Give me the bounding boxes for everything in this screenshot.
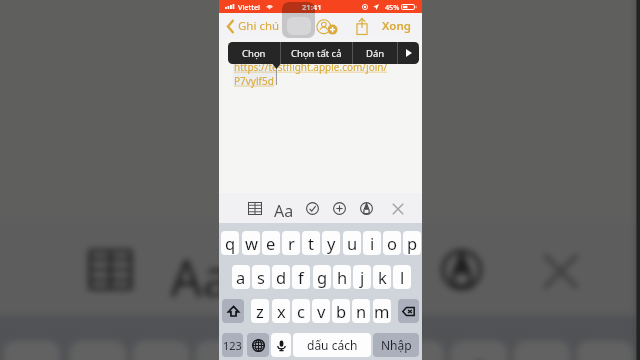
button[interactable]: More options (398, 42, 419, 64)
button[interactable]: p (577, 341, 633, 360)
staticText: r (214, 344, 236, 360)
staticText: P7vylf5d (234, 74, 274, 88)
staticText: e (266, 232, 276, 254)
staticText: Nhập (381, 337, 412, 353)
staticText: Aa (274, 200, 294, 217)
button[interactable]: n (352, 299, 370, 323)
staticText: Aa (170, 243, 233, 297)
staticText: d (276, 266, 287, 288)
button[interactable]: Add attachment (333, 202, 346, 215)
button[interactable]: t (302, 231, 320, 255)
staticText: Dán (366, 47, 385, 60)
staticText: r (288, 232, 295, 254)
staticText: Ghi chú (238, 18, 280, 34)
button[interactable]: Hide keyboard (542, 252, 580, 290)
button[interactable]: i (451, 341, 507, 360)
button[interactable]: o (514, 341, 570, 360)
button[interactable]: k (373, 265, 391, 289)
button[interactable]: i (363, 231, 381, 255)
button[interactable]: Ghi chú (219, 18, 284, 34)
button[interactable]: Checklist (271, 249, 312, 290)
staticText: n (356, 300, 367, 322)
button[interactable]: s (252, 265, 270, 289)
staticText: z (256, 300, 264, 322)
staticText: Chọn (242, 47, 266, 60)
button[interactable]: e (262, 231, 280, 255)
staticText: t (277, 344, 296, 360)
button[interactable]: m (373, 299, 391, 323)
button[interactable]: a (232, 265, 250, 289)
button[interactable]: Insert table (88, 249, 132, 290)
button[interactable]: u (388, 341, 444, 360)
staticText: a (236, 266, 246, 288)
button[interactable]: x (272, 299, 290, 323)
button[interactable]: y (322, 231, 340, 255)
button[interactable]: Checklist (306, 202, 319, 215)
staticText: Chọn tất cả (291, 47, 342, 60)
button[interactable]: dấu cách (293, 333, 371, 357)
button[interactable]: Backspace (398, 299, 419, 323)
button[interactable]: q (3, 341, 60, 360)
button[interactable]: j (353, 265, 371, 289)
button[interactable]: Dictate (271, 333, 291, 357)
button[interactable]: Markup (441, 249, 482, 290)
button[interactable]: Chọn (228, 42, 280, 64)
button[interactable]: r (195, 341, 252, 360)
button[interactable]: Add people (315, 16, 339, 38)
staticText: 45% (385, 2, 400, 12)
button[interactable]: Hide keyboard (392, 203, 404, 215)
button[interactable]: Aa (274, 200, 294, 217)
button[interactable]: w (69, 341, 126, 360)
staticText: dấu cách (307, 337, 358, 353)
button[interactable]: e (132, 341, 189, 360)
button[interactable]: Change keyboard language (247, 333, 269, 357)
button[interactable]: h (333, 265, 351, 289)
button[interactable]: r (282, 231, 300, 255)
button[interactable]: g (313, 265, 331, 289)
button[interactable]: Insert table (248, 202, 262, 215)
button[interactable]: 123 (222, 333, 243, 357)
staticText: h (337, 266, 348, 288)
staticText: k (378, 266, 387, 288)
staticText: u (347, 232, 358, 254)
button[interactable]: Nhập (373, 333, 419, 357)
button[interactable]: Chọn tất cả (281, 42, 352, 64)
button[interactable]: d (272, 265, 290, 289)
button[interactable]: q (221, 231, 239, 255)
button[interactable]: o (383, 231, 401, 255)
staticText: y (337, 344, 366, 360)
button[interactable]: z (251, 299, 269, 323)
staticText: i (370, 232, 375, 254)
button[interactable]: Markup (360, 202, 373, 215)
button[interactable]: Add attachment (356, 249, 397, 290)
button[interactable]: b (332, 299, 350, 323)
button[interactable]: Dán (353, 42, 397, 64)
staticText: g (317, 266, 328, 288)
staticText: 123 (223, 338, 242, 353)
button[interactable]: f (292, 265, 310, 289)
button[interactable]: y (321, 341, 378, 360)
button[interactable]: Xong (382, 18, 422, 34)
staticText: b (336, 300, 347, 322)
staticText: o (387, 232, 397, 254)
button[interactable]: u (343, 231, 361, 255)
button[interactable]: c (292, 299, 310, 323)
staticText: w (245, 232, 258, 254)
button[interactable]: v (312, 299, 330, 323)
button[interactable]: w (242, 231, 260, 255)
button[interactable]: l (393, 265, 411, 289)
staticText: m (374, 300, 390, 322)
staticText: q (225, 232, 236, 254)
button[interactable]: p (403, 231, 421, 255)
staticText: s (257, 266, 265, 288)
button[interactable]: Aa (170, 243, 233, 297)
button[interactable]: Share (353, 17, 371, 36)
staticText: c (297, 300, 305, 322)
button[interactable]: t (258, 341, 315, 360)
button[interactable]: Shift (222, 299, 244, 323)
